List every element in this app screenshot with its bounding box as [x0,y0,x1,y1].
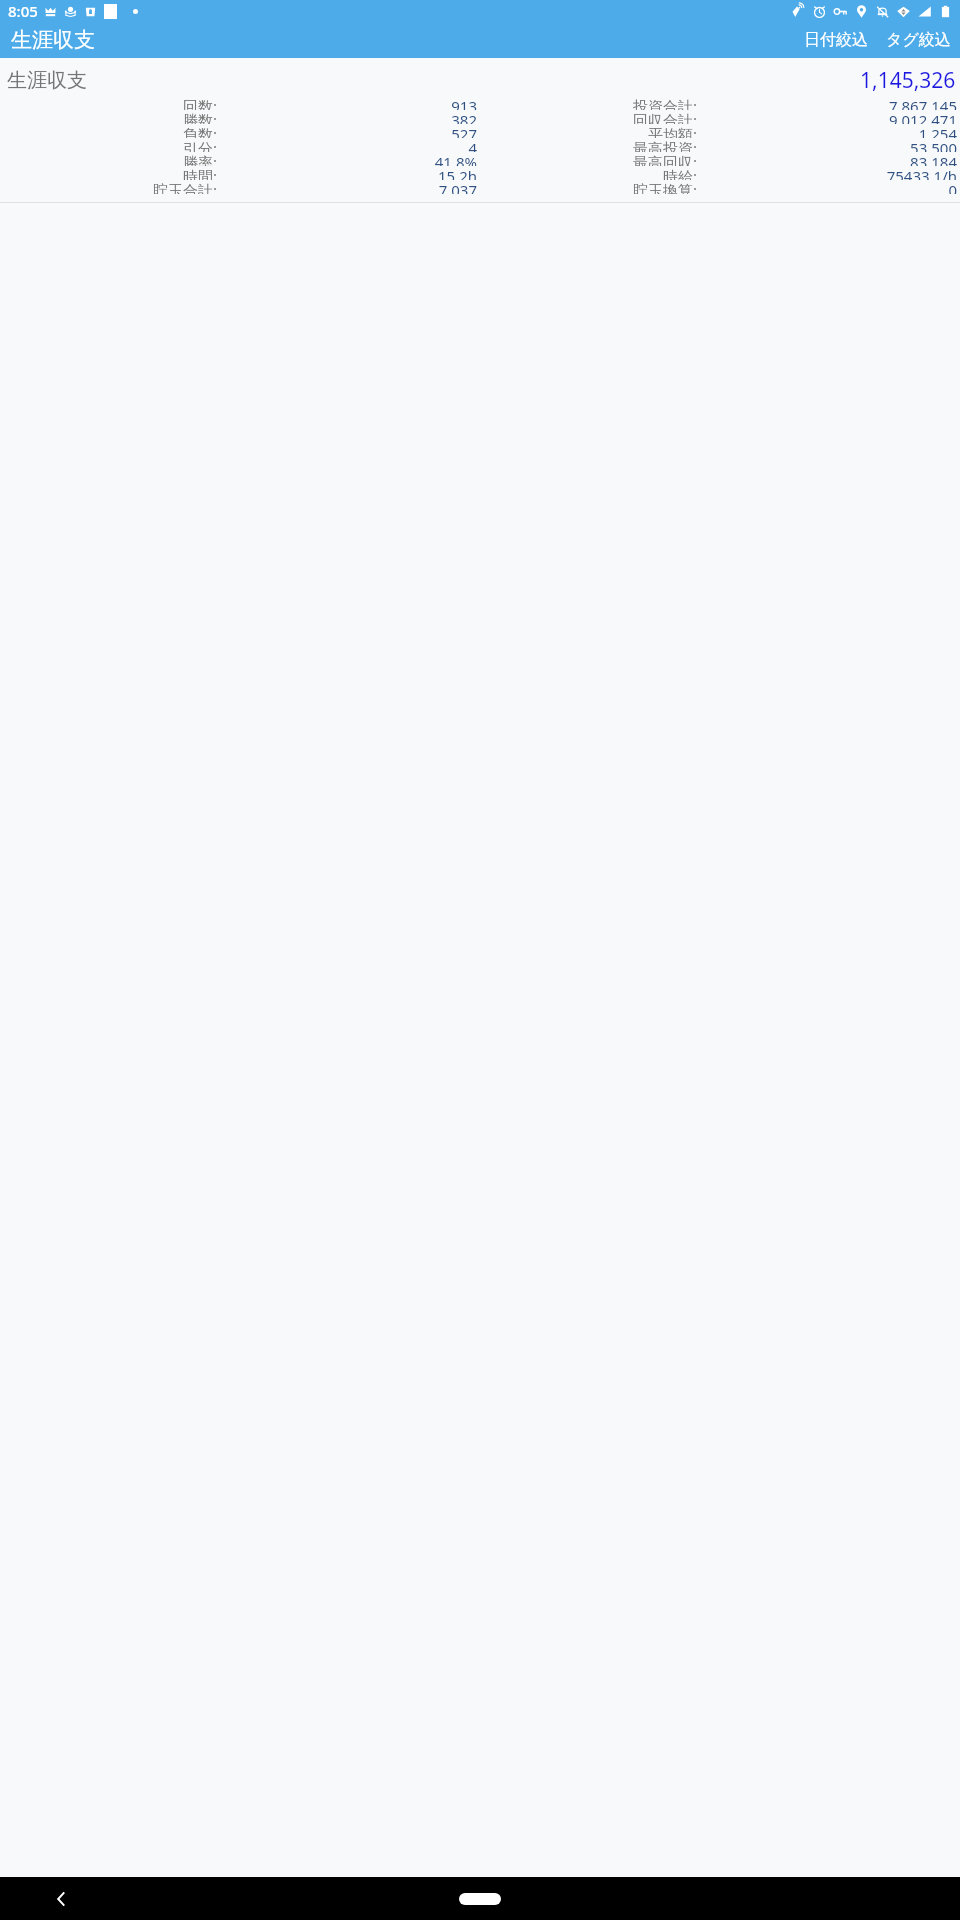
staticText: 最高回収: [480,152,697,166]
staticText: 生涯収支 [7,68,87,93]
button[interactable]: タグ絞込 [877,24,960,56]
staticText: 15.2h [222,166,477,180]
staticText: 1,254 [702,124,957,138]
staticText: 勝率: [0,152,217,166]
staticText: 4 [222,138,477,152]
button[interactable]: 日付絞込 [795,24,877,56]
staticText: 53,500 [702,138,957,152]
staticText: 生涯収支 [11,27,95,53]
staticText: 貯玉換算: [480,180,697,194]
staticText: タグ絞込 [886,30,951,50]
staticText: 83,184 [702,152,957,166]
staticText: 日付絞込 [804,30,868,50]
staticText: 41.8% [222,152,477,166]
staticText: 負数: [0,124,217,138]
staticText: 527 [222,124,477,138]
button[interactable]: Back [48,1886,74,1912]
staticText: 最高投資: [480,138,697,152]
staticText: 貯玉合計: [0,180,217,194]
staticText: 913 [222,96,477,110]
staticText: 75433.1/h [702,166,957,180]
staticText: 7,037 [222,180,477,194]
staticText: 1,145,326 [860,66,956,95]
staticText: 382 [222,110,477,124]
staticText: 回数: [0,96,217,110]
staticText: 平均額: [480,124,697,138]
button[interactable]: Home [459,1893,501,1905]
staticText: 時給: [480,166,697,180]
staticText: 投資合計: [480,96,697,110]
staticText: 8:05 [8,1,38,21]
staticText: 引分: [0,138,217,152]
staticText: 0 [702,180,957,194]
staticText: 時間: [0,166,217,180]
staticText: 7,867,145 [702,96,957,110]
staticText: 回収合計: [480,110,697,124]
staticText: 勝数: [0,110,217,124]
staticText: 9,012,471 [702,110,957,124]
button[interactable]: 生涯収支 [0,58,960,96]
